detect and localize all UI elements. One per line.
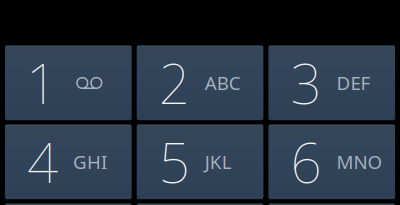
staticText: ABC [205,70,241,95]
staticText: MNO [336,149,382,174]
button[interactable]: 3 [268,45,395,120]
staticText: 5 [159,126,190,198]
button[interactable]: 6 [268,124,395,199]
staticText: 2 [159,47,190,119]
staticText: DEF [336,70,370,95]
button[interactable]: 9 [268,203,395,205]
staticText: JKL [205,149,232,174]
button[interactable]: 7 [5,203,132,205]
button[interactable]: 2 [137,45,263,120]
staticText: 1 [26,47,57,119]
button[interactable]: 4 [5,124,132,199]
staticText: 6 [290,126,321,198]
staticText: GHI [73,149,107,174]
staticText: 4 [27,126,58,198]
staticText: 3 [290,47,321,119]
button[interactable]: 1 [5,45,132,120]
button[interactable]: 5 [137,124,263,199]
